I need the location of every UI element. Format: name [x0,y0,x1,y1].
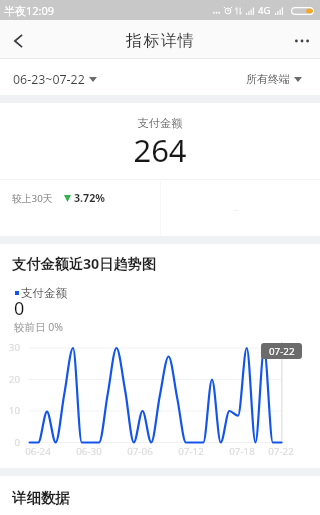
button[interactable]: 所有终端 [246,72,302,86]
staticText: 20 [2,373,20,386]
staticText: 0 [2,436,20,449]
staticText: 30 [2,341,20,354]
staticText: 07-12 [176,445,206,458]
staticText: 06-23~07-22 [13,71,85,88]
staticText: 指标详情 [126,31,195,51]
staticText: 详细数据 [12,489,70,507]
button[interactable]: Back [0,20,36,58]
staticText: 264 [0,129,320,171]
staticText: 06-30 [74,445,104,458]
staticText: 07-06 [125,445,155,458]
staticText: 06-24 [23,445,53,458]
staticText: 支付金额近30日趋势图 [12,254,156,273]
staticText: 较前日 0% [14,320,63,334]
staticText: 10 [2,404,20,417]
staticText: -- [234,204,240,215]
staticText: 半夜12:09 [4,3,55,18]
staticText: 0 [14,296,25,321]
staticText: 支付金额 [0,116,320,130]
staticText: 07-18 [227,445,257,458]
staticText: 3.72% [74,191,105,206]
staticText: 所有终端 [246,72,290,86]
staticText: 07-22 [266,445,296,458]
button[interactable]: More options [284,20,320,58]
staticText: 07-22 [269,345,295,358]
staticText: 支付金额 [21,286,67,300]
staticText: 4G [258,4,271,17]
button[interactable]: 06-23~07-22 [13,71,97,88]
staticText: 较上30天 [12,192,53,205]
